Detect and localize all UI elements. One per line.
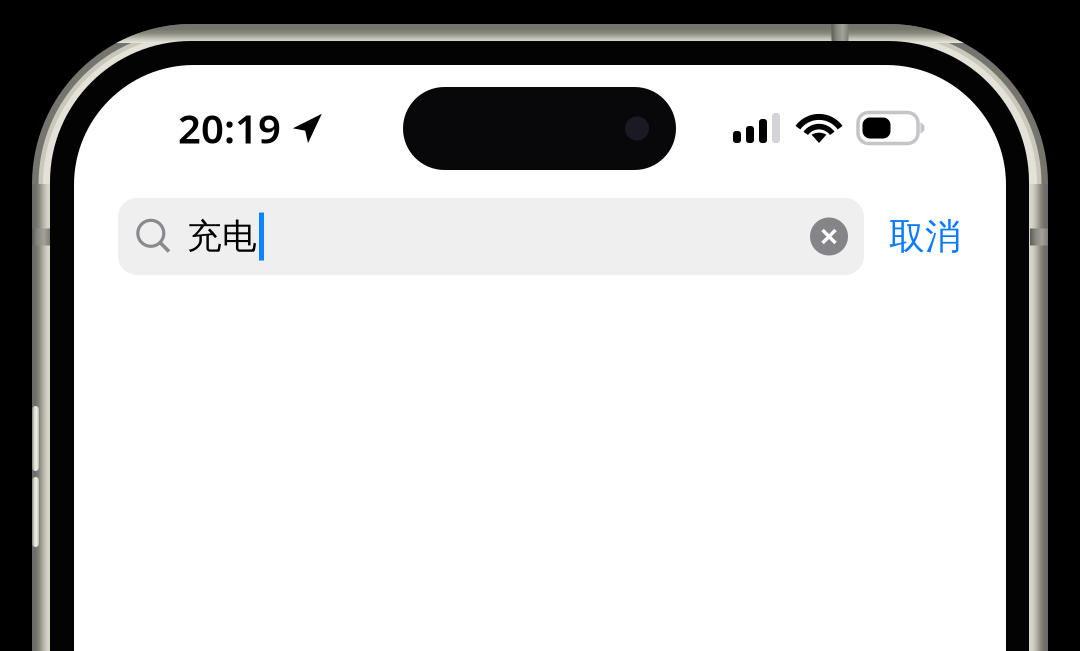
button[interactable]: 取消 <box>864 198 962 275</box>
button[interactable]: 充电 <box>118 198 864 275</box>
staticText: 20:19 <box>178 101 281 154</box>
staticText: 充电 <box>187 215 257 258</box>
staticText: 取消 <box>889 214 961 259</box>
